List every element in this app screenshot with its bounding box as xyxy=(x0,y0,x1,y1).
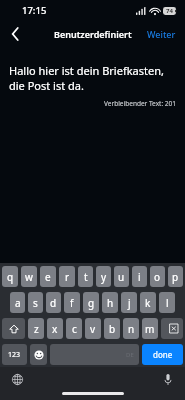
button[interactable]: p xyxy=(168,266,183,287)
button[interactable]: w xyxy=(21,266,37,287)
staticText: done xyxy=(153,349,173,360)
button[interactable]: g xyxy=(83,292,99,313)
button[interactable]: z xyxy=(28,318,44,339)
staticText: m xyxy=(145,322,155,336)
button[interactable]: m xyxy=(142,318,158,339)
staticText: i xyxy=(138,270,141,284)
button[interactable]: s xyxy=(28,292,43,313)
staticText: t xyxy=(84,270,88,284)
staticText: r xyxy=(65,270,70,284)
staticText: l xyxy=(166,296,169,310)
button[interactable]: Shift xyxy=(2,318,25,339)
staticText: h xyxy=(107,296,114,310)
staticText: n xyxy=(128,322,135,336)
button[interactable]: h xyxy=(102,292,118,313)
button[interactable]: b xyxy=(104,318,120,339)
staticText: u xyxy=(118,270,125,284)
button[interactable]: f xyxy=(64,292,80,313)
button[interactable]: o xyxy=(150,266,165,287)
button[interactable]: 123 xyxy=(2,344,27,365)
staticText: d xyxy=(50,296,57,310)
button[interactable]: done xyxy=(142,344,183,365)
staticText: y xyxy=(101,270,107,284)
button[interactable]: q xyxy=(2,266,18,287)
button[interactable]: e xyxy=(40,266,56,287)
button[interactable]: y xyxy=(96,266,111,287)
button[interactable]: j xyxy=(121,292,137,313)
button[interactable]: c xyxy=(66,318,82,339)
staticText: s xyxy=(33,296,38,310)
button[interactable]: Change language xyxy=(7,369,27,389)
staticText: Hallo hier ist dein Briefkasten, die Pos… xyxy=(9,63,176,93)
staticText: v xyxy=(90,322,96,336)
staticText: k xyxy=(145,296,151,310)
staticText: 74 xyxy=(166,7,173,15)
staticText: x xyxy=(52,322,58,336)
staticText: f xyxy=(70,296,74,310)
button[interactable]: Weiter xyxy=(138,23,185,45)
staticText: p xyxy=(172,270,179,284)
button[interactable]: Voice input xyxy=(158,369,178,389)
staticText: g xyxy=(88,296,95,310)
staticText: b xyxy=(109,322,116,336)
button[interactable]: d xyxy=(46,292,61,313)
staticText: j xyxy=(128,296,131,310)
button[interactable]: l xyxy=(159,292,175,313)
staticText: z xyxy=(34,322,39,336)
button[interactable]: Emoji xyxy=(30,344,47,365)
button[interactable]: x xyxy=(47,318,63,339)
staticText: 17:15 xyxy=(22,4,47,17)
button[interactable]: t xyxy=(78,266,93,287)
staticText: w xyxy=(25,270,33,284)
staticText: q xyxy=(7,270,14,284)
staticText: Benutzerdefiniert xyxy=(54,28,132,40)
button[interactable]: Back xyxy=(0,21,30,47)
button[interactable]: a xyxy=(10,292,25,313)
button[interactable]: v xyxy=(85,318,101,339)
staticText: a xyxy=(15,296,21,310)
staticText: c xyxy=(72,322,77,336)
staticText: e xyxy=(45,270,51,284)
staticText: DE xyxy=(126,351,134,359)
button[interactable]: u xyxy=(114,266,129,287)
staticText: Weiter xyxy=(147,28,176,40)
button[interactable]: k xyxy=(140,292,156,313)
staticText: o xyxy=(154,270,161,284)
button[interactable]: r xyxy=(59,266,75,287)
button[interactable]: i xyxy=(132,266,147,287)
button[interactable]: Backspace xyxy=(161,318,183,339)
button[interactable]: n xyxy=(123,318,139,339)
staticText: Verbleibender Text: 201 xyxy=(0,99,176,108)
staticText: 123 xyxy=(8,350,21,360)
